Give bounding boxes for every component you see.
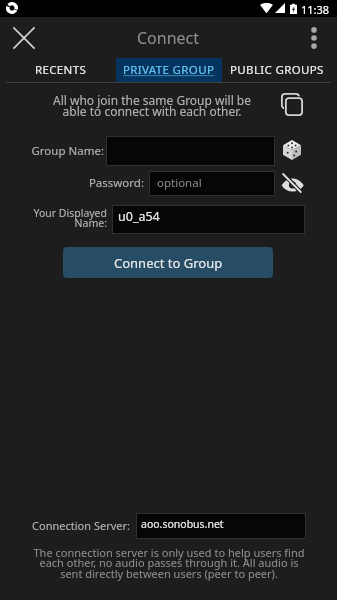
staticText: The connection server is only used to he… <box>32 545 306 582</box>
button[interactable]: PRIVATE GROUP <box>116 58 222 82</box>
staticText: u0_a54 <box>118 208 160 225</box>
button[interactable]: PUBLIC GROUPS <box>224 58 330 82</box>
button[interactable] <box>106 136 275 166</box>
staticText: All who join the same Group will be able… <box>32 92 272 119</box>
staticText: Password: <box>0 175 144 191</box>
staticText: 11:38 <box>301 2 330 17</box>
staticText: optional <box>157 175 202 191</box>
button[interactable]: RECENTS <box>7 58 114 82</box>
button[interactable] <box>136 513 306 539</box>
button[interactable] <box>149 171 275 196</box>
button[interactable]: More options <box>297 19 333 57</box>
staticText: Connection Server: <box>0 518 130 533</box>
staticText: Connect to Group <box>114 254 223 272</box>
staticText: PRIVATE GROUP <box>123 62 215 78</box>
staticText: Group Name: <box>0 143 104 159</box>
staticText: aoo.sonobus.net <box>141 517 224 531</box>
button[interactable]: Close <box>5 19 43 57</box>
staticText: Your Displayed Name: <box>27 206 107 230</box>
button[interactable]: Copy group link <box>274 88 310 120</box>
button[interactable] <box>112 205 305 234</box>
button[interactable]: Random group name <box>276 136 308 164</box>
staticText: Connect <box>137 27 200 49</box>
button[interactable]: Connect to Group <box>63 247 273 278</box>
staticText: RECENTS <box>35 62 87 78</box>
button[interactable]: Show password <box>276 170 309 196</box>
staticText: PUBLIC GROUPS <box>230 62 324 78</box>
